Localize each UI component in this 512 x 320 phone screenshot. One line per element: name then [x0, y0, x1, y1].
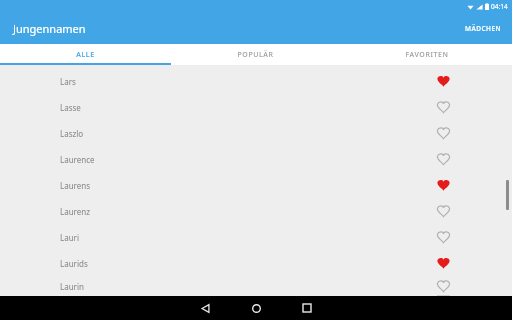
- staticText: Laurin: [60, 281, 84, 292]
- staticText: Lauri: [60, 232, 79, 243]
- button[interactable]: Zu Favoriten hinzufügen: [433, 123, 453, 143]
- staticText: MÄDCHEN: [465, 24, 502, 33]
- button[interactable]: Laurence: [0, 146, 512, 172]
- button[interactable]: Lauri: [0, 224, 512, 250]
- button[interactable]: Laurin: [0, 276, 512, 296]
- button[interactable]: Favorit entfernen: [433, 253, 453, 273]
- button[interactable]: Laurenz: [0, 198, 512, 224]
- button[interactable]: Zu Favoriten hinzufügen: [433, 97, 453, 117]
- button[interactable]: Lasse: [0, 94, 512, 120]
- button[interactable]: Zu Favoriten hinzufügen: [433, 227, 453, 247]
- staticText: FAVORITEN: [405, 50, 449, 60]
- button[interactable]: Zu Favoriten hinzufügen: [433, 149, 453, 169]
- staticText: Laszlo: [60, 128, 84, 139]
- button[interactable]: Favorit entfernen: [433, 175, 453, 195]
- staticText: Laurenz: [60, 206, 90, 217]
- button[interactable]: ALLE: [0, 44, 170, 65]
- button[interactable]: Laszlo: [0, 120, 512, 146]
- button[interactable]: Zu Favoriten hinzufügen: [433, 201, 453, 221]
- button[interactable]: MÄDCHEN: [455, 12, 512, 44]
- button[interactable]: FAVORITEN: [341, 44, 512, 65]
- staticText: Laurens: [60, 180, 91, 191]
- button[interactable]: Favorit entfernen: [433, 71, 453, 91]
- button[interactable]: Laurids: [0, 250, 512, 276]
- button[interactable]: Laurens: [0, 172, 512, 198]
- staticText: Laurids: [60, 258, 88, 269]
- button[interactable]: Startbildschirm: [239, 296, 273, 320]
- staticText: Lars: [60, 76, 76, 87]
- button[interactable]: Zurück: [188, 296, 222, 320]
- staticText: Jungennamen: [13, 21, 86, 36]
- staticText: ALLE: [76, 50, 95, 60]
- staticText: POPULÄR: [237, 50, 274, 60]
- staticText: Lasse: [60, 102, 81, 113]
- button[interactable]: POPULÄR: [170, 44, 341, 65]
- staticText: Laurence: [60, 154, 95, 165]
- button[interactable]: Zu Favoriten hinzufügen: [433, 276, 453, 296]
- button[interactable]: Lars: [0, 68, 512, 94]
- staticText: 04:14: [491, 2, 508, 11]
- button[interactable]: Übersicht: [290, 296, 324, 320]
